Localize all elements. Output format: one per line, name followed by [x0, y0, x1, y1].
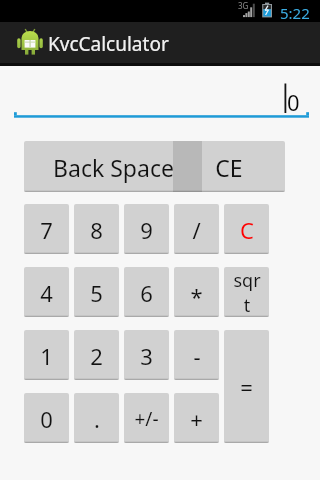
- button[interactable]: 8: [74, 204, 119, 254]
- button[interactable]: 5: [74, 267, 119, 317]
- staticText: =: [240, 372, 253, 402]
- staticText: 5: [90, 278, 103, 308]
- button[interactable]: .: [74, 393, 119, 443]
- button[interactable]: 2: [74, 330, 119, 380]
- button[interactable]: 9: [124, 204, 169, 254]
- staticText: 5:22: [280, 3, 310, 23]
- staticText: 6: [140, 278, 153, 308]
- staticText: .: [94, 404, 100, 434]
- button[interactable]: CE: [173, 141, 285, 192]
- staticText: 0: [40, 404, 53, 434]
- staticText: 0: [287, 87, 300, 117]
- other: KvcCalculator application icon: [17, 27, 43, 59]
- staticText: 1: [40, 341, 53, 371]
- staticText: 2: [90, 341, 103, 371]
- button[interactable]: /: [174, 204, 219, 254]
- staticText: 3G: [238, 0, 249, 11]
- button[interactable]: 4: [24, 267, 69, 317]
- staticText: *: [190, 281, 203, 311]
- staticText: -: [193, 341, 201, 371]
- staticText: 8: [90, 215, 103, 245]
- button[interactable]: C: [224, 204, 269, 254]
- button[interactable]: +: [174, 393, 219, 443]
- button[interactable]: 7: [24, 204, 69, 254]
- staticText: 4: [40, 278, 53, 308]
- button[interactable]: +/-: [124, 393, 169, 443]
- button[interactable]: =: [224, 330, 269, 443]
- button[interactable]: 0: [24, 393, 69, 443]
- staticText: sqr t: [233, 268, 261, 317]
- staticText: 3: [140, 341, 153, 371]
- staticText: 7: [40, 215, 53, 245]
- button[interactable]: 3: [124, 330, 169, 380]
- button[interactable]: Back Space: [24, 141, 202, 192]
- staticText: 9: [140, 215, 153, 245]
- staticText: +: [190, 404, 203, 434]
- button[interactable]: sqr t: [224, 267, 269, 317]
- button[interactable]: *: [174, 267, 219, 317]
- staticText: CE: [215, 152, 243, 183]
- button[interactable]: 1: [24, 330, 69, 380]
- button[interactable]: -: [174, 330, 219, 380]
- staticText: C: [240, 215, 254, 245]
- button[interactable]: 6: [124, 267, 169, 317]
- staticText: +/-: [134, 406, 159, 432]
- staticText: KvcCalculator: [48, 31, 169, 57]
- staticText: /: [192, 215, 201, 245]
- staticText: Back Space: [53, 152, 174, 183]
